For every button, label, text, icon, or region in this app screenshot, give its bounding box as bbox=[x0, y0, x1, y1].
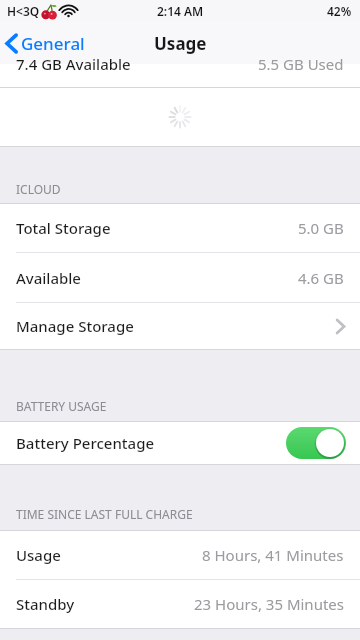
staticText: General bbox=[21, 32, 85, 55]
staticText: 5.5 GB Used bbox=[258, 54, 344, 74]
staticText: TIME SINCE LAST FULL CHARGE bbox=[16, 506, 193, 522]
staticText: 8 Hours, 41 Minutes bbox=[202, 545, 344, 565]
staticText: 5.0 GB bbox=[298, 218, 344, 238]
staticText: 2:14 AM bbox=[157, 3, 204, 19]
staticText: Manage Storage bbox=[16, 316, 134, 336]
staticText: 4.6 GB bbox=[298, 268, 344, 288]
button[interactable]: General bbox=[6, 32, 85, 55]
staticText: BATTERY USAGE bbox=[16, 398, 107, 414]
staticText: Battery Percentage bbox=[16, 433, 155, 453]
staticText: 7.4 GB Available bbox=[16, 54, 131, 74]
staticText: Usage bbox=[154, 32, 207, 55]
staticText: Standby bbox=[16, 594, 75, 614]
staticText: Usage bbox=[16, 545, 61, 565]
button[interactable]: Available bbox=[0, 253, 360, 302]
staticText: 42% bbox=[327, 3, 352, 19]
staticText: H<3Q bbox=[7, 3, 40, 19]
staticText: Available bbox=[16, 268, 81, 288]
staticText: ICLOUD bbox=[16, 181, 61, 197]
button[interactable]: Total Storage bbox=[0, 204, 360, 252]
button[interactable]: Standby bbox=[0, 580, 360, 628]
staticText: 23 Hours, 35 Minutes bbox=[194, 594, 344, 614]
button[interactable]: Battery Percentage toggle bbox=[286, 427, 346, 459]
button[interactable]: Battery Percentage bbox=[0, 422, 360, 464]
button[interactable]: 7.4 GB Available bbox=[0, 64, 360, 88]
button[interactable]: Manage Storage bbox=[0, 303, 360, 349]
staticText: Total Storage bbox=[16, 218, 111, 238]
button[interactable]: Usage bbox=[0, 531, 360, 579]
